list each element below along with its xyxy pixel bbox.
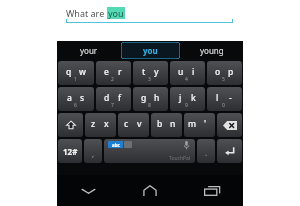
staticText: 4 [185,76,188,83]
button[interactable]: Shift [58,113,83,137]
staticText: i [192,66,195,78]
staticText: z [91,118,96,130]
button[interactable]: Space [104,139,195,163]
button[interactable]: u [170,61,205,85]
button[interactable]: Enter [217,139,242,163]
staticText: l [216,92,219,104]
staticText: h [154,92,160,104]
button[interactable]: Backspace [217,113,242,137]
button[interactable]: c [118,113,149,137]
staticText: t [142,66,146,78]
button[interactable]: g [133,87,168,111]
staticText: c [124,118,129,130]
staticText: a [67,92,72,104]
button[interactable]: m [184,113,215,137]
button[interactable]: Period [197,139,215,163]
staticText: x [104,118,109,130]
staticText: e [104,66,109,78]
button[interactable]: e [96,61,131,85]
staticText: you [108,7,124,19]
staticText: , [92,148,95,159]
staticText: f [118,92,122,104]
staticText: n [170,118,176,130]
staticText: b [157,118,163,130]
staticText: your [80,45,98,56]
button[interactable]: a [58,87,94,111]
staticText: - [229,92,232,104]
staticText: you [143,45,158,56]
button[interactable]: Comma [84,139,102,163]
button[interactable]: j [170,87,205,111]
button[interactable]: t [133,61,168,85]
staticText: 0 [222,102,225,109]
staticText: 7 [111,102,114,109]
staticText: q [66,66,72,78]
button[interactable]: o [207,61,242,85]
staticText: m [188,118,197,130]
staticText: p [228,66,234,78]
staticText: y [154,66,159,78]
staticText: s [80,92,85,104]
button[interactable]: 12# [58,139,82,163]
button[interactable]: Hide keyboard [57,175,119,206]
staticText: . [205,147,208,158]
button[interactable]: you [121,42,180,59]
button[interactable]: z [85,113,116,137]
button[interactable]: Home [119,175,181,206]
staticText: j [179,92,182,104]
staticText: d [104,92,110,104]
button[interactable]: What are [66,5,125,21]
staticText: 3 [148,76,151,83]
staticText: What are [66,7,107,19]
staticText: abc [112,142,120,148]
button[interactable]: your [59,42,119,59]
staticText: 9 [185,102,188,109]
staticText: 6 [74,102,77,109]
staticText: k [191,92,196,104]
staticText: 5 [222,76,225,83]
button[interactable]: Recent apps [181,175,243,206]
staticText: TouchPal [169,155,191,162]
staticText: r [118,66,122,78]
staticText: 1 [74,76,77,83]
staticText: g [141,92,147,104]
staticText: w [79,66,86,78]
staticText: young [200,45,224,56]
staticText: 8 [148,102,151,109]
staticText: u [178,66,184,78]
button[interactable]: d [96,87,131,111]
button[interactable]: q [58,61,94,85]
staticText: o [215,66,221,78]
staticText: 12# [63,146,78,157]
staticText: ' [204,118,207,130]
button[interactable]: b [151,113,182,137]
staticText: v [137,118,142,130]
button[interactable]: young [182,42,241,59]
staticText: 2 [111,76,114,83]
button[interactable]: l [207,87,242,111]
